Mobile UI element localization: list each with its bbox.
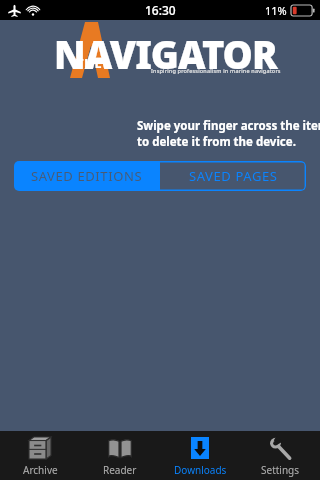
staticText: Archive [23, 463, 58, 477]
staticText: Inspiring professionalism in marine navi… [151, 67, 281, 74]
staticText: 16:30 [145, 2, 176, 18]
button[interactable]: Downloads [160, 431, 240, 480]
staticText: SAVED EDITIONS [31, 167, 143, 185]
staticText: Swipe your finger across the item to del… [137, 118, 320, 149]
staticText: NAVIGATOR [54, 28, 277, 80]
other: Archive [29, 437, 51, 459]
staticText: Reader [103, 463, 137, 477]
other: Downloads [191, 437, 209, 459]
staticText: THE [76, 54, 103, 72]
other: Settings [269, 437, 292, 460]
button[interactable]: Archive [0, 431, 80, 480]
button[interactable]: Reader [80, 431, 160, 480]
staticText: SAVED PAGES [189, 167, 278, 185]
button[interactable]: Settings [240, 431, 320, 480]
staticText: 11% [265, 3, 287, 18]
staticText: Downloads [174, 463, 227, 477]
button[interactable]: SAVED PAGES [160, 161, 306, 191]
button[interactable]: SAVED EDITIONS [14, 161, 160, 191]
other: Reader [108, 436, 132, 460]
staticText: Settings [261, 463, 300, 477]
